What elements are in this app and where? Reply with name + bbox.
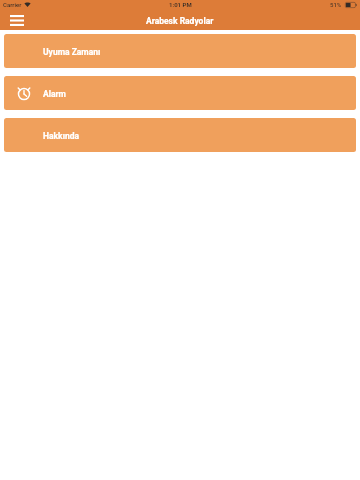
button[interactable]: Uyuma Zamanı — [4, 34, 356, 68]
staticText: Alarm — [43, 89, 66, 99]
button[interactable]: Open navigation menu — [0, 11, 33, 30]
staticText: Carrier — [3, 1, 22, 8]
staticText: Hakkında — [43, 131, 80, 141]
button[interactable]: Alarm — [4, 76, 356, 110]
button[interactable]: Hakkında — [4, 118, 356, 152]
staticText: 1:01 PM — [169, 1, 192, 8]
staticText: Uyuma Zamanı — [43, 47, 101, 57]
staticText: 51% — [330, 1, 342, 8]
staticText: Arabesk Radyolar — [146, 16, 214, 26]
